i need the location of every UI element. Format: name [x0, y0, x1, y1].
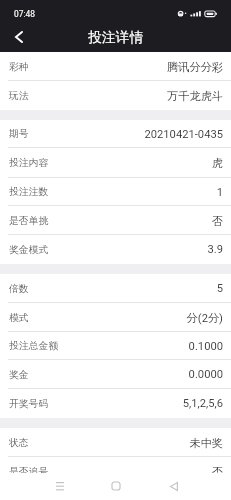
staticText: 20210421-0435 — [33, 128, 223, 141]
staticText: 是否追号 — [9, 466, 49, 478]
button[interactable]: 是否单挑 — [0, 206, 231, 235]
staticText: 1 — [53, 186, 223, 199]
staticText: 0.0000 — [33, 368, 223, 381]
staticText: 万千龙虎斗 — [33, 89, 223, 103]
staticText: 玩法 — [9, 90, 29, 102]
staticText: 虎 — [53, 156, 223, 170]
staticText: 奖金模式 — [9, 244, 49, 256]
button[interactable]: 期号 — [0, 120, 231, 148]
button[interactable]: 是否追号 — [0, 457, 231, 486]
button[interactable]: 玩法 — [0, 81, 231, 110]
staticText: 未中奖 — [33, 436, 223, 450]
button[interactable]: 奖金模式 — [0, 235, 231, 264]
button[interactable]: Recent apps — [51, 477, 69, 495]
button[interactable]: 奖金 — [0, 360, 231, 389]
staticText: 模式 — [9, 312, 29, 324]
button[interactable]: 状态 — [0, 428, 231, 457]
staticText: 期号 — [9, 128, 29, 140]
button[interactable]: 模式 — [0, 303, 231, 332]
staticText: 否 — [53, 214, 223, 228]
staticText: 0.1000 — [62, 340, 223, 353]
button[interactable]: 投注注数 — [0, 178, 231, 206]
staticText: 投注注数 — [9, 186, 49, 198]
staticText: 奖金 — [9, 369, 29, 381]
staticText: 否 — [53, 465, 223, 479]
staticText: 5,1,2,5,6 — [53, 397, 223, 410]
staticText: 投注详情 — [88, 29, 144, 46]
staticText: 投注内容 — [9, 157, 49, 169]
staticText: 是否单挑 — [9, 215, 49, 227]
button[interactable]: 彩种 — [0, 52, 231, 81]
staticText: 腾讯分分彩 — [33, 60, 223, 74]
staticText: 07:48 — [14, 9, 35, 19]
staticText: 彩种 — [9, 61, 29, 73]
button[interactable]: Home — [107, 477, 125, 495]
button[interactable]: Back — [165, 477, 183, 495]
button[interactable]: 投注内容 — [0, 148, 231, 178]
staticText: 投注总金额 — [9, 340, 58, 352]
staticText: 开奖号码 — [9, 398, 49, 410]
staticText: 分(2分) — [33, 311, 223, 325]
button[interactable]: 投注总金额 — [0, 332, 231, 360]
staticText: 倍数 — [9, 283, 29, 295]
button[interactable]: 倍数 — [0, 274, 231, 303]
staticText: 3.9 — [53, 243, 223, 256]
staticText: 状态 — [9, 437, 29, 449]
button[interactable]: 开奖号码 — [0, 389, 231, 418]
button[interactable]: Back — [5, 23, 32, 50]
staticText: 5 — [33, 282, 223, 295]
